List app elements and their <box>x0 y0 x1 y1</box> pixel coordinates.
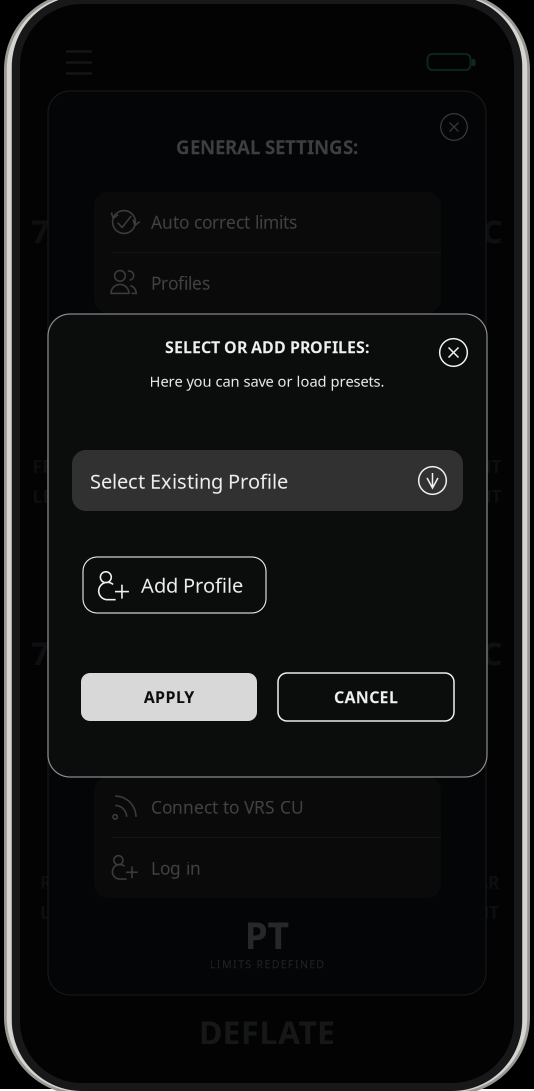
button[interactable]: Profiles <box>94 253 441 313</box>
button[interactable]: Log in <box>94 838 441 898</box>
staticText: Profiles <box>151 271 210 294</box>
button[interactable]: CANCEL <box>278 673 454 721</box>
button[interactable]: Close <box>439 338 468 367</box>
staticText: Add Profile <box>141 572 243 598</box>
staticText: REAR <box>455 870 499 893</box>
staticText: Log in <box>151 856 201 879</box>
staticText: 7 <box>31 632 49 674</box>
button[interactable]: Menu <box>66 51 92 73</box>
staticText: PT <box>244 910 289 960</box>
staticText: Connect to VRS CU <box>151 795 304 818</box>
button[interactable]: APPLY <box>81 673 257 721</box>
staticText: FRONT <box>32 454 91 477</box>
staticText: FRONT <box>442 454 501 477</box>
button[interactable]: Add Profile <box>83 557 266 613</box>
button[interactable]: Close settings <box>440 113 468 141</box>
staticText: 7 <box>31 210 49 252</box>
staticText: LEFT <box>32 484 72 507</box>
staticText: REAR <box>40 870 84 893</box>
staticText: APPLY <box>144 686 194 708</box>
staticText: CANCEL <box>334 686 398 708</box>
staticText: Here you can save or load presets. <box>149 371 384 391</box>
staticText: SELECT OR ADD PROFILES: <box>165 336 369 358</box>
staticText: Auto correct limits <box>151 210 297 233</box>
staticText: C <box>482 210 503 252</box>
staticText: C <box>482 632 503 674</box>
staticText: Select Existing Profile <box>90 468 288 494</box>
staticText: RIGHT <box>447 484 501 507</box>
staticText: DEFLATE <box>199 1011 335 1053</box>
button[interactable]: Select Existing Profile <box>72 450 463 511</box>
button[interactable]: Connect to VRS CU <box>94 777 441 837</box>
staticText: GENERAL SETTINGS: <box>176 135 358 159</box>
staticText: LIMITS REDEFINED <box>210 957 324 971</box>
button[interactable]: Auto correct limits <box>94 192 441 252</box>
